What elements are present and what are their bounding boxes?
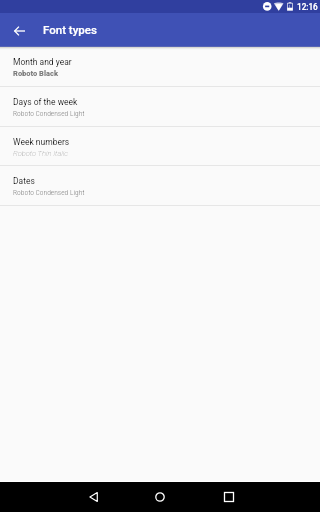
button[interactable]: Week numbers xyxy=(0,127,320,166)
button[interactable]: Dates xyxy=(0,166,320,206)
staticText: Roboto Condensed Light xyxy=(13,188,85,197)
staticText: Roboto Thin Italic xyxy=(13,149,68,158)
staticText: Font types xyxy=(43,23,97,36)
button[interactable]: Navigate up xyxy=(6,17,33,44)
button[interactable]: Home xyxy=(140,482,180,512)
staticText: Dates xyxy=(13,176,35,186)
staticText: Roboto Condensed Light xyxy=(13,109,85,118)
button[interactable]: Month and year xyxy=(0,47,320,87)
button[interactable]: Days of the week xyxy=(0,87,320,127)
staticText: Month and year xyxy=(13,57,72,67)
staticText: Week numbers xyxy=(13,137,70,147)
staticText: 12:16 xyxy=(297,2,318,12)
staticText: Roboto Black xyxy=(13,69,58,78)
button[interactable]: Back xyxy=(73,482,113,512)
staticText: Days of the week xyxy=(13,97,78,107)
button[interactable]: Recent apps xyxy=(209,482,249,512)
